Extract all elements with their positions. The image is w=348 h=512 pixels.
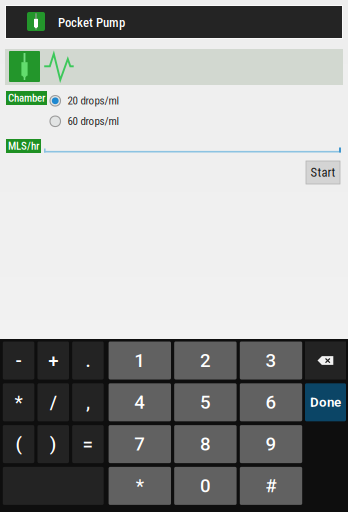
staticText: 8 <box>200 433 211 455</box>
staticText: 0 <box>200 475 211 497</box>
staticText: / <box>50 391 57 413</box>
button[interactable]: ) <box>37 425 69 463</box>
staticText: 9 <box>265 433 276 455</box>
staticText: Pocket Pump <box>58 15 125 30</box>
staticText: + <box>48 350 58 371</box>
button[interactable]: / <box>37 383 69 421</box>
staticText: 2 <box>200 350 211 371</box>
button[interactable]: Start <box>306 161 340 184</box>
button[interactable]: 60 drops/ml <box>50 113 160 129</box>
staticText: 60 drops/ml <box>67 115 119 128</box>
button[interactable]: 7 <box>109 425 171 463</box>
staticText: MLS/hr <box>8 140 39 152</box>
button[interactable]: 3 <box>240 341 302 379</box>
button[interactable]: * <box>3 383 34 421</box>
staticText: 7 <box>134 433 145 455</box>
staticText: Start <box>310 165 335 180</box>
staticText: , <box>86 391 90 413</box>
staticText: 4 <box>134 391 145 413</box>
button[interactable]: 0 <box>174 467 237 505</box>
button[interactable]: # <box>240 467 302 505</box>
staticText: = <box>82 433 93 455</box>
staticText: # <box>265 475 276 497</box>
staticText: 6 <box>265 391 276 413</box>
button[interactable]: 9 <box>240 425 302 463</box>
staticText: 1 <box>134 350 145 371</box>
button[interactable]: . <box>72 341 104 379</box>
button[interactable]: Delete <box>305 341 346 379</box>
staticText: * <box>15 391 23 413</box>
staticText: * <box>136 475 144 497</box>
button[interactable]: + <box>37 341 69 379</box>
button[interactable]: 8 <box>174 425 237 463</box>
button[interactable]: , <box>72 383 104 421</box>
button[interactable]: 4 <box>109 383 171 421</box>
button[interactable]: 6 <box>240 383 302 421</box>
button[interactable]: 5 <box>174 383 237 421</box>
button[interactable]: * <box>109 467 171 505</box>
staticText: Done <box>310 394 341 410</box>
staticText: ( <box>16 433 22 455</box>
staticText: - <box>16 350 22 371</box>
button[interactable]: ( <box>3 425 34 463</box>
staticText: ) <box>50 433 57 455</box>
button[interactable]: - <box>3 341 34 379</box>
button[interactable]: = <box>72 425 104 463</box>
button[interactable]: 20 drops/ml <box>50 93 160 109</box>
staticText: . <box>85 350 90 371</box>
button[interactable]: Done <box>305 383 346 421</box>
staticText: 3 <box>265 350 276 371</box>
staticText: 5 <box>200 391 211 413</box>
staticText: 20 drops/ml <box>67 94 119 107</box>
button[interactable]: 2 <box>174 341 237 379</box>
button[interactable]: 1 <box>109 341 171 379</box>
staticText: Chamber <box>8 92 45 104</box>
